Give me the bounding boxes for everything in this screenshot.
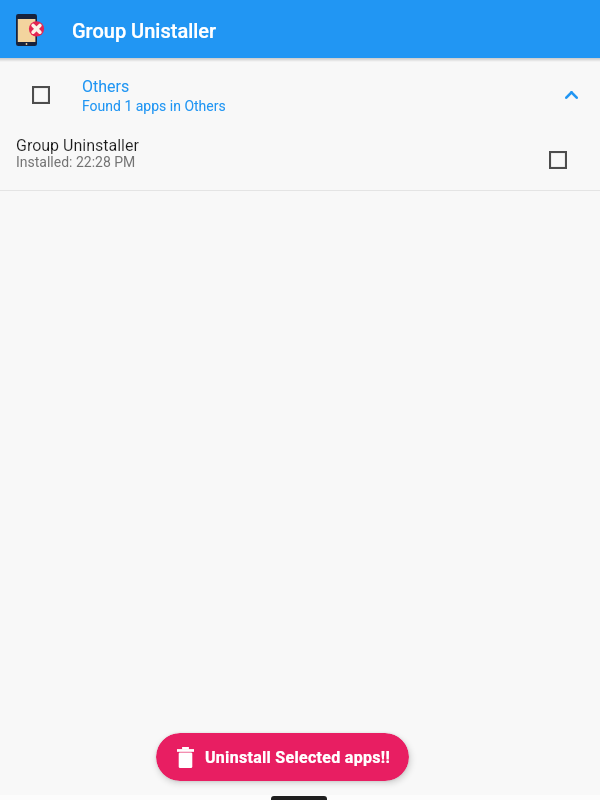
staticText: Uninstall Selected apps!! (205, 748, 391, 767)
staticText: Group Unistaller (72, 19, 217, 42)
staticText: Others (82, 77, 130, 96)
other: App icon (16, 13, 46, 46)
staticText: Found 1 apps in Others (82, 98, 226, 114)
button[interactable]: Group Uninstaller (0, 130, 600, 190)
button[interactable]: Uninstall Selected apps!! (156, 733, 409, 781)
button[interactable]: Collapse group (550, 74, 592, 116)
staticText: Installed: 22:28 PM (16, 154, 136, 170)
button[interactable]: Others (0, 62, 600, 130)
staticText: Group Uninstaller (16, 136, 139, 155)
